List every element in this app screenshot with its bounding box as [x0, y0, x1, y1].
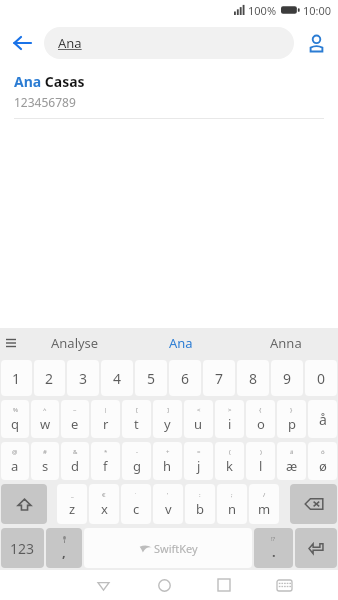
button[interactable]: 3	[67, 360, 99, 396]
button[interactable]: ;	[217, 484, 247, 524]
button[interactable]: ö	[308, 442, 337, 480]
staticText: r	[103, 415, 109, 433]
button[interactable]: /	[249, 484, 279, 524]
button[interactable]: Contacts	[294, 21, 338, 65]
staticText: 4	[113, 369, 122, 388]
staticText: ^	[43, 406, 47, 414]
staticText: 10:00	[303, 3, 332, 18]
button[interactable]: >	[215, 400, 244, 438]
staticText: k	[226, 457, 233, 475]
button[interactable]: <	[184, 400, 213, 438]
button[interactable]: 1	[1, 360, 32, 396]
button[interactable]: 4	[101, 360, 133, 396]
staticText: z	[69, 500, 76, 518]
button[interactable]: 0	[305, 360, 337, 396]
button[interactable]: @	[1, 442, 29, 480]
button[interactable]: Anna	[233, 328, 338, 358]
button[interactable]: !?	[254, 528, 293, 568]
button[interactable]: Ana Casas	[0, 66, 338, 119]
staticText: &	[73, 448, 78, 456]
button[interactable]: |	[91, 400, 120, 438]
button[interactable]: Recents	[194, 570, 254, 600]
button[interactable]: 2	[34, 360, 65, 396]
button[interactable]: _	[57, 484, 87, 524]
button[interactable]: }	[277, 400, 306, 438]
button[interactable]: #	[31, 442, 59, 480]
staticText: a	[11, 457, 19, 475]
button[interactable]: Keyboard menu	[0, 328, 22, 358]
button[interactable]: (	[215, 442, 244, 480]
button[interactable]: 123	[1, 528, 44, 568]
button[interactable]: 7	[203, 360, 235, 396]
staticText: 123456789	[14, 94, 76, 110]
button[interactable]: Hide keyboard	[254, 570, 314, 600]
button[interactable]: €	[89, 484, 119, 524]
button[interactable]: '	[153, 484, 183, 524]
button[interactable]: {	[246, 400, 275, 438]
button[interactable]: SwiftKey	[84, 528, 252, 568]
button[interactable]: )	[246, 442, 275, 480]
staticText: '	[167, 491, 169, 499]
staticText: +	[166, 448, 170, 456]
button[interactable]: Backspace	[290, 484, 337, 524]
staticText: ø	[319, 457, 327, 475]
button[interactable]: Ana	[128, 328, 233, 358]
staticText: n	[228, 500, 237, 518]
button[interactable]: Back	[0, 21, 44, 65]
button[interactable]: Analyse	[22, 328, 128, 358]
staticText: 3	[79, 369, 88, 388]
staticText: å	[319, 410, 327, 429]
button[interactable]: å	[308, 400, 337, 438]
button[interactable]: %	[1, 400, 29, 438]
staticText: !?	[271, 535, 276, 543]
staticText: 100%	[248, 3, 277, 18]
staticText: t	[134, 415, 139, 433]
staticText: /	[263, 491, 266, 499]
staticText: Ana	[58, 34, 82, 52]
staticText: 6	[181, 369, 190, 388]
staticText: ˙	[135, 491, 137, 499]
staticText: Ana	[169, 334, 193, 352]
staticText: ~	[73, 406, 77, 414]
button[interactable]: Back	[73, 570, 134, 600]
staticText: b	[196, 500, 204, 518]
staticText: ö	[321, 448, 325, 456]
button[interactable]: 9	[271, 360, 303, 396]
button[interactable]: &	[61, 442, 89, 480]
staticText: *	[104, 448, 108, 456]
button[interactable]: ^	[31, 400, 59, 438]
button[interactable]: +	[153, 442, 182, 480]
staticText: 0	[317, 369, 326, 388]
button[interactable]: ˙	[121, 484, 151, 524]
button[interactable]: Enter	[295, 528, 337, 568]
button[interactable]: ~	[61, 400, 89, 438]
staticText: j	[197, 457, 201, 475]
staticText: q	[11, 415, 19, 433]
button[interactable]: Shift	[1, 484, 47, 524]
button[interactable]: =	[184, 442, 213, 480]
button[interactable]: ,	[46, 528, 82, 568]
staticText: Anna	[270, 334, 302, 352]
button[interactable]: *	[91, 442, 120, 480]
button[interactable]: ]	[153, 400, 182, 438]
button[interactable]: :	[185, 484, 215, 524]
staticText: f	[103, 457, 108, 475]
staticText: -	[136, 448, 138, 456]
button[interactable]: 6	[169, 360, 201, 396]
staticText: @	[12, 448, 18, 456]
staticText: i	[228, 415, 232, 433]
button[interactable]: -	[122, 442, 151, 480]
staticText: 2	[45, 369, 54, 388]
staticText: 8	[249, 369, 258, 388]
staticText: c	[133, 500, 140, 518]
button[interactable]: [	[122, 400, 151, 438]
staticText: o	[257, 415, 265, 433]
staticText: ä	[290, 448, 294, 456]
button[interactable]: Home	[134, 570, 194, 600]
staticText: s	[42, 457, 49, 475]
button[interactable]: Ana	[44, 27, 294, 59]
button[interactable]: 8	[237, 360, 269, 396]
button[interactable]: ä	[277, 442, 306, 480]
staticText: Ana Casas	[14, 72, 85, 91]
button[interactable]: 5	[135, 360, 167, 396]
